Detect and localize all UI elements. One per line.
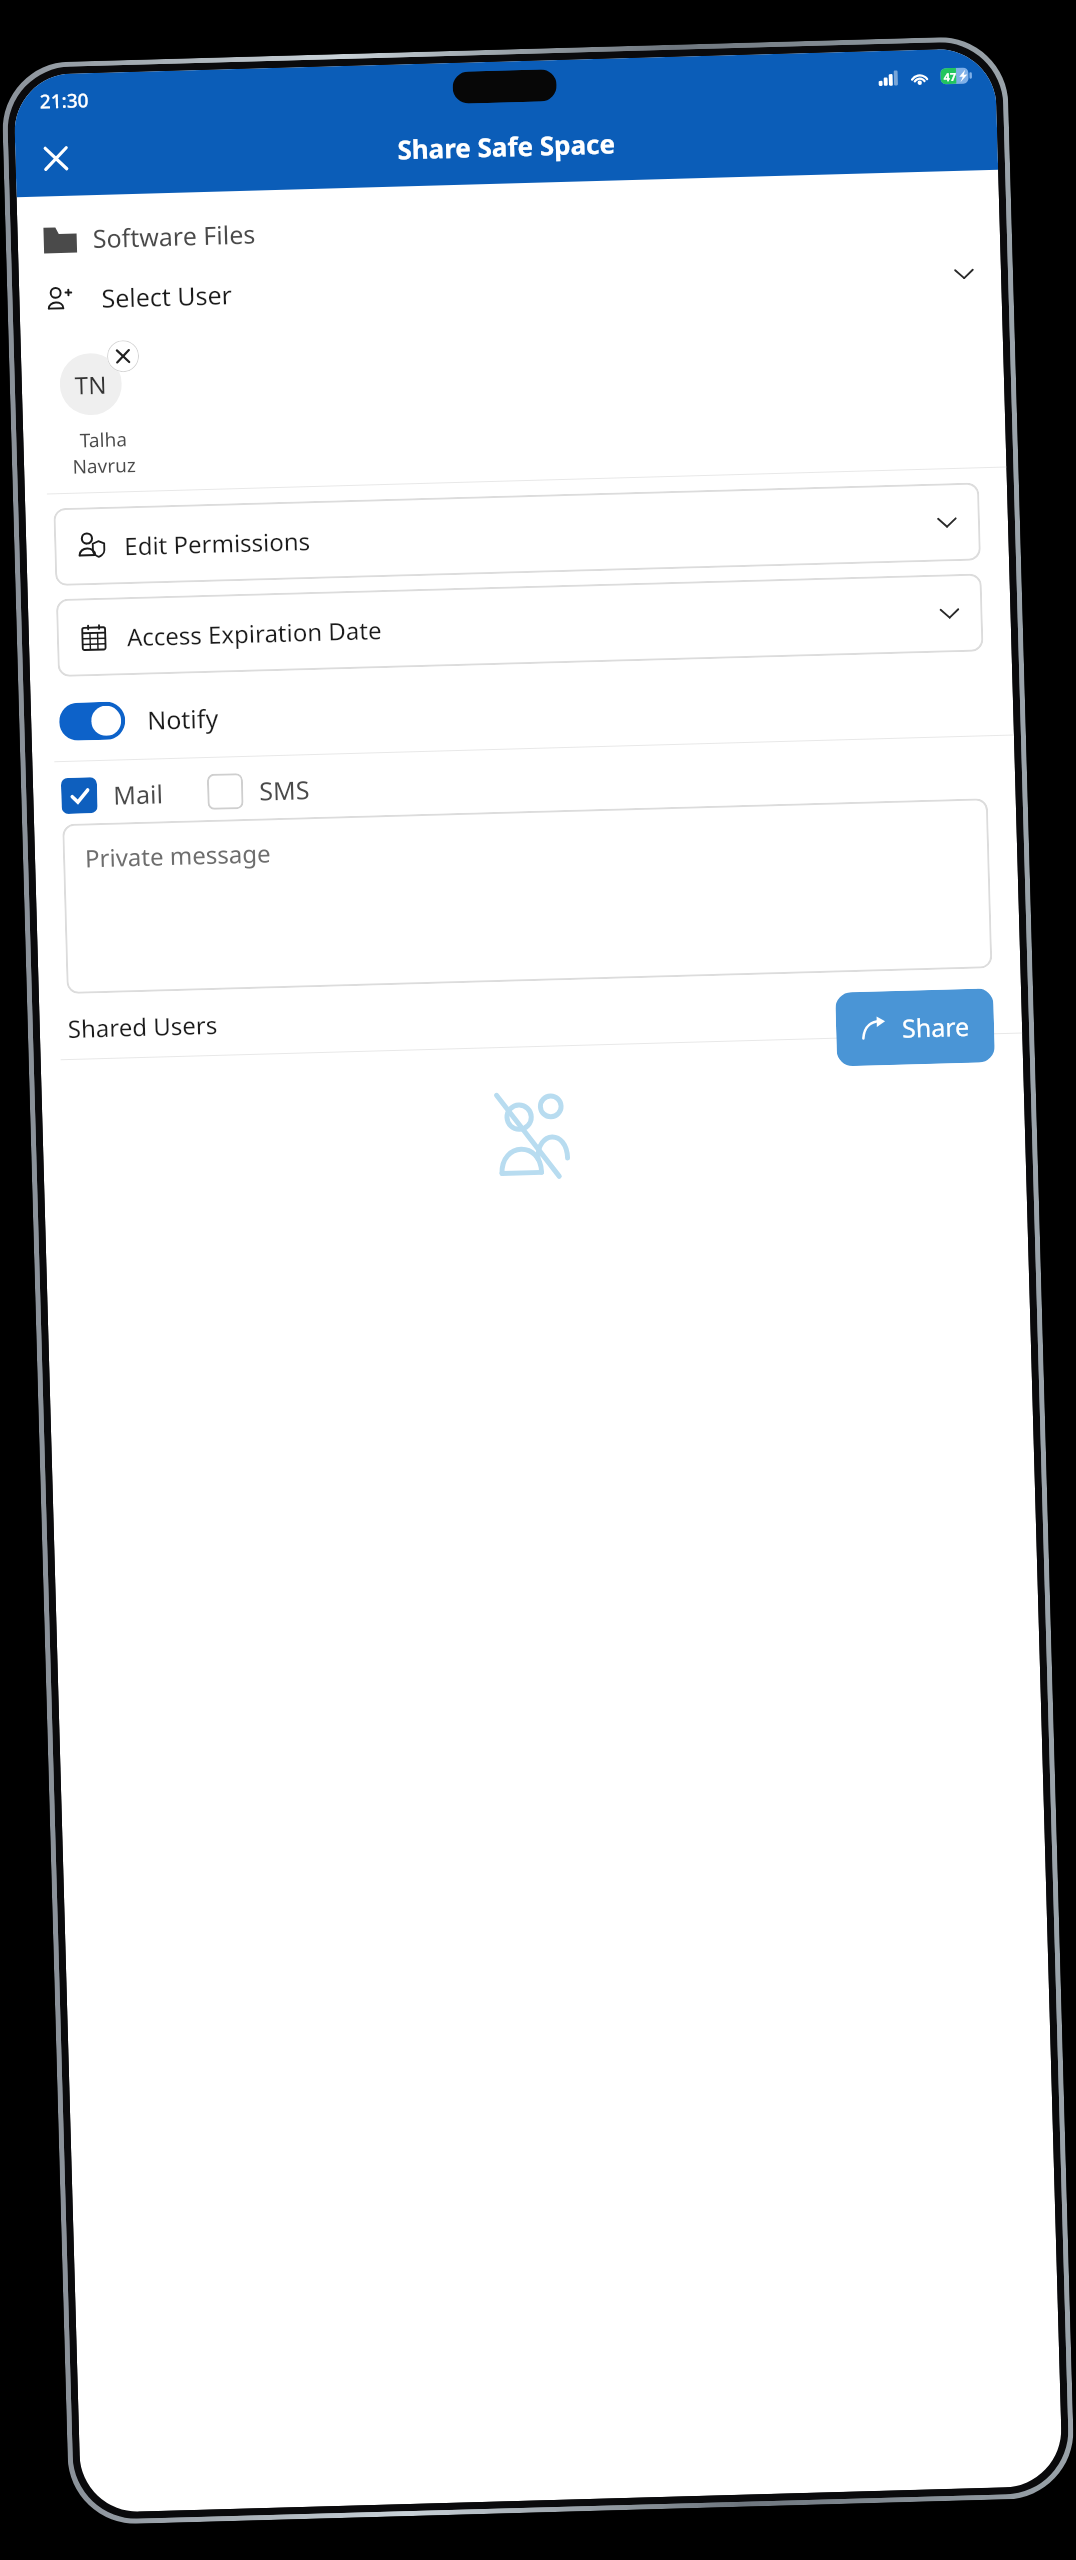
button[interactable]: TN (59, 352, 123, 416)
staticText: Notify (147, 701, 219, 737)
button[interactable]: Close (33, 135, 78, 181)
button[interactable]: Share (835, 988, 995, 1067)
staticText: Access Expiration Date (126, 613, 382, 653)
button[interactable]: SMS (207, 771, 311, 810)
staticText: Select User (101, 277, 233, 315)
button[interactable]: Notify (30, 670, 1013, 748)
staticText: Talha Navruz (61, 426, 146, 479)
staticText: TN (74, 368, 107, 402)
staticText: SMS (259, 772, 311, 808)
staticText: Edit Permissions (124, 524, 311, 562)
button[interactable]: Select User (18, 240, 1002, 333)
staticText: 47 (943, 69, 957, 84)
staticText: Software Files (92, 216, 256, 255)
staticText: Shared Users (67, 1008, 218, 1045)
staticText: Mail (113, 776, 164, 812)
button[interactable]: Private message (62, 798, 992, 994)
staticText: Share Safe Space (397, 125, 616, 166)
button[interactable]: Access Expiration Date (56, 573, 984, 677)
staticText: 21:30 (39, 87, 89, 114)
button[interactable]: Edit Permissions (53, 482, 981, 586)
staticText: Share (902, 1009, 970, 1045)
button[interactable]: Mail (61, 775, 164, 814)
staticText: Private message (85, 836, 271, 874)
button[interactable]: Software Files (17, 176, 1000, 267)
button[interactable]: Remove user (107, 340, 139, 373)
